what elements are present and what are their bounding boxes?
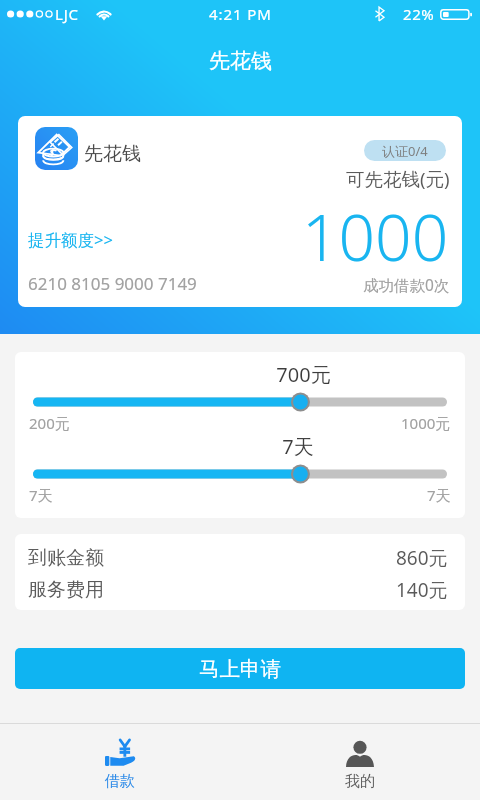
staticText: 7天 — [427, 485, 451, 505]
staticText: 先花钱 — [84, 142, 141, 166]
staticText: 先花钱 — [209, 48, 272, 74]
staticText: 6210 8105 9000 7149 — [28, 272, 197, 295]
staticText: 1000 — [302, 193, 449, 280]
staticText: 服务费用 — [28, 578, 104, 602]
staticText: 成功借款0次 — [363, 274, 450, 295]
staticText: 到账金额 — [28, 546, 104, 570]
staticText: 140元 — [396, 577, 448, 603]
staticText: 1000元 — [401, 413, 451, 433]
staticText: 700元 — [276, 361, 331, 388]
staticText: LJC — [55, 4, 79, 24]
other: 借款 — [105, 740, 136, 767]
button[interactable]: 提升额度>> — [28, 228, 113, 251]
staticText: 22% — [403, 4, 435, 24]
button[interactable]: 我的 — [240, 724, 480, 800]
staticText: 7天 — [282, 433, 314, 460]
staticText: 4:21 PM — [209, 4, 272, 24]
button[interactable]: 先花钱 — [18, 116, 462, 307]
button[interactable]: Adjust 7天 — [33, 464, 447, 484]
staticText: 借款 — [105, 772, 135, 791]
staticText: 认证0/4 — [382, 142, 428, 160]
staticText: 马上申请 — [199, 656, 281, 682]
button[interactable]: 马上申请 — [15, 648, 465, 689]
staticText: 可先花钱(元) — [346, 166, 450, 191]
staticText: 我的 — [345, 772, 375, 791]
staticText: 7天 — [29, 485, 53, 505]
staticText: 860元 — [396, 545, 448, 571]
button[interactable]: 借款 — [0, 724, 240, 800]
button[interactable]: Adjust 700元 — [33, 392, 447, 412]
staticText: 200元 — [29, 413, 70, 433]
other: 我的 — [346, 740, 374, 767]
